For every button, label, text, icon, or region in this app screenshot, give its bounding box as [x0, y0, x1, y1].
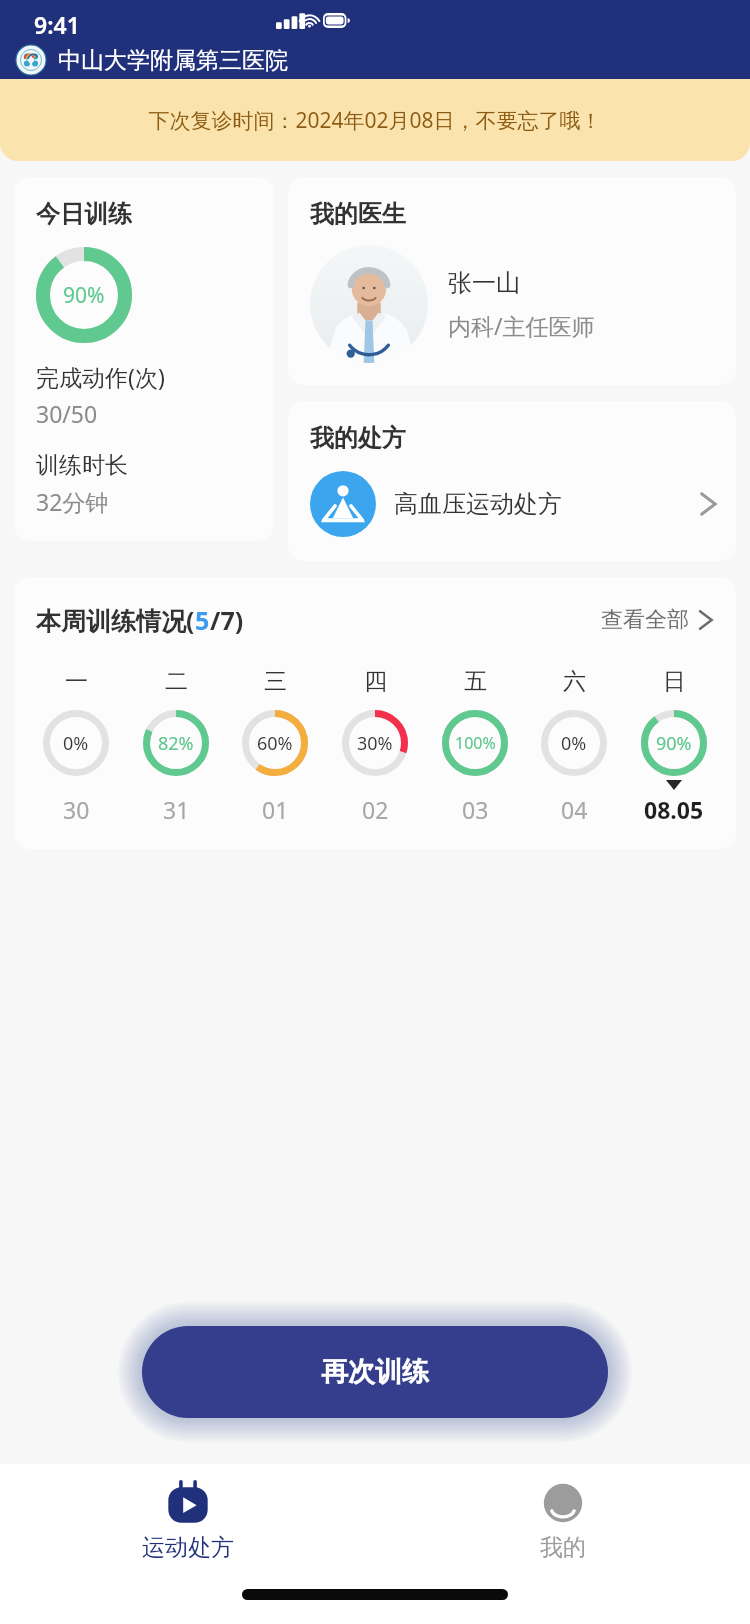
staticText: 08.05	[644, 794, 704, 825]
staticText: 0%	[63, 731, 89, 756]
staticText: 六	[563, 667, 586, 696]
button[interactable]: 我的	[509, 1475, 617, 1566]
staticText: 日	[663, 667, 686, 696]
staticText: 82%	[158, 731, 194, 756]
button[interactable]: 高血压运动处方	[310, 471, 718, 537]
staticText: 90%	[63, 281, 105, 310]
staticText: 9:41	[34, 9, 80, 40]
staticText: 32分钟	[36, 486, 109, 517]
button[interactable]: 再次训练	[142, 1326, 608, 1418]
button[interactable]: 三	[235, 667, 315, 825]
button[interactable]: 六	[534, 667, 614, 825]
staticText: 本周训练情况(	[36, 603, 195, 637]
staticText: 五	[464, 667, 487, 696]
staticText: 高血压运动处方	[394, 489, 562, 519]
staticText: 四	[364, 667, 387, 696]
staticText: 我的处方	[310, 423, 406, 453]
button[interactable]: 运动处方	[112, 1475, 264, 1566]
button[interactable]: 今日训练	[14, 177, 274, 541]
staticText: 30	[63, 794, 90, 825]
staticText: 90%	[656, 731, 692, 756]
staticText: 60%	[257, 731, 293, 756]
staticText: 02	[362, 794, 389, 825]
staticText: 100%	[455, 732, 496, 754]
staticText: 内科/主任医师	[448, 310, 595, 341]
staticText: 我的	[540, 1533, 586, 1562]
staticText: 5	[195, 603, 210, 637]
staticText: /7)	[210, 603, 244, 637]
staticText: 31	[163, 794, 190, 825]
button[interactable]: 五	[435, 667, 515, 825]
button[interactable]: 查看全部	[601, 606, 714, 634]
staticText: 我的医生	[310, 199, 406, 229]
button[interactable]: 我的医生	[288, 177, 736, 385]
staticText: 完成动作(次)	[36, 361, 165, 392]
staticText: 0%	[561, 731, 587, 756]
button[interactable]: 日	[634, 667, 714, 825]
staticText: 04	[561, 794, 588, 825]
staticText: 二	[165, 667, 188, 696]
staticText: 30%	[357, 731, 393, 756]
button[interactable]: 四	[335, 667, 415, 825]
staticText: 中山大学附属第三医院	[58, 46, 288, 75]
button[interactable]: 下次复诊时间：2024年02月08日，不要忘了哦！	[0, 79, 750, 161]
staticText: 03	[462, 794, 489, 825]
staticText: 01	[262, 794, 289, 825]
staticText: 张一山	[448, 268, 520, 298]
staticText: 三	[264, 667, 287, 696]
staticText: 训练时长	[36, 451, 128, 480]
staticText: 今日训练	[36, 199, 132, 229]
staticText: 查看全部	[601, 606, 689, 634]
staticText: 运动处方	[142, 1533, 234, 1562]
button[interactable]: 二	[136, 667, 216, 825]
staticText: 下次复诊时间：2024年02月08日，不要忘了哦！	[148, 106, 602, 135]
staticText: 一	[65, 667, 88, 696]
staticText: 再次训练	[321, 1355, 429, 1389]
staticText: 30/50	[36, 398, 98, 429]
button[interactable]: 一	[36, 667, 116, 825]
